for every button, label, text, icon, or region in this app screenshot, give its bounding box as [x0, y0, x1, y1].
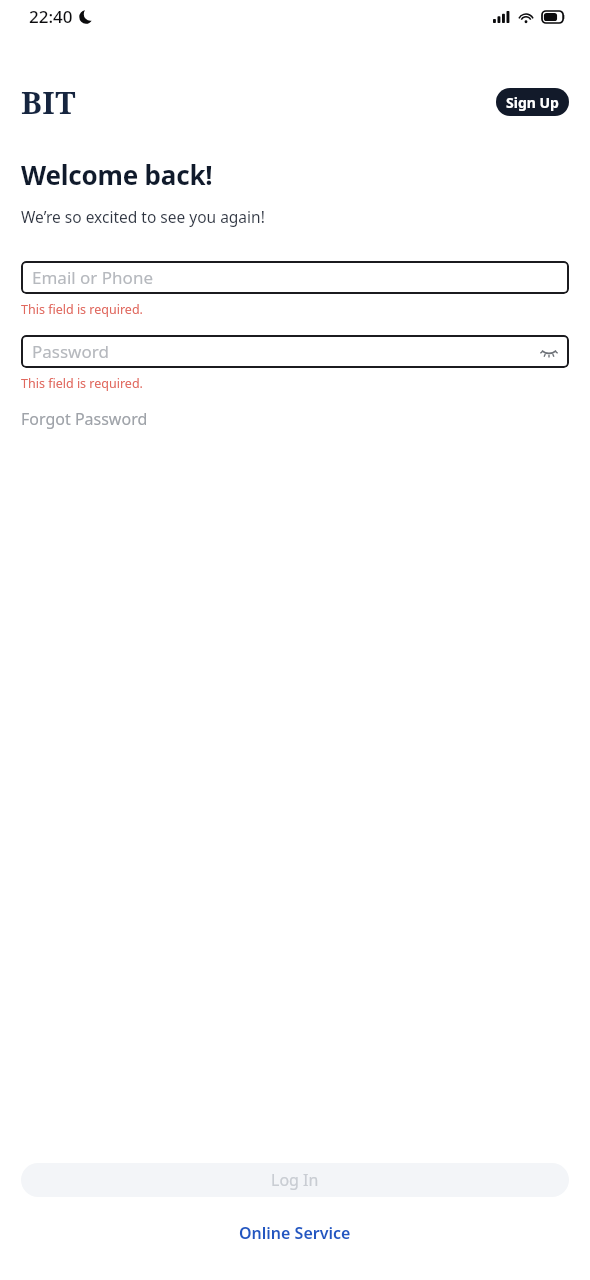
staticText: BIT — [21, 81, 77, 123]
staticText: Email or Phone — [32, 266, 153, 289]
staticText: Welcome back! — [21, 157, 213, 192]
staticText: Log In — [271, 1169, 319, 1191]
staticText: We’re so excited to see you again! — [21, 206, 265, 227]
staticText: Password — [32, 340, 109, 363]
button[interactable]: Online Service — [231, 1219, 359, 1247]
button[interactable]: Email or Phone — [21, 261, 569, 294]
staticText: This field is required. — [21, 301, 143, 318]
button[interactable]: Show password — [539, 342, 559, 362]
staticText: Forgot Password — [21, 408, 148, 430]
staticText: 22:40 — [29, 5, 73, 28]
staticText: Online Service — [239, 1222, 351, 1244]
staticText: This field is required. — [21, 375, 143, 392]
button[interactable]: Sign Up — [496, 88, 569, 116]
button[interactable]: Forgot Password — [21, 406, 148, 432]
staticText: Sign Up — [506, 93, 559, 112]
button[interactable]: Password — [21, 335, 569, 368]
button[interactable]: Log In — [21, 1163, 569, 1197]
